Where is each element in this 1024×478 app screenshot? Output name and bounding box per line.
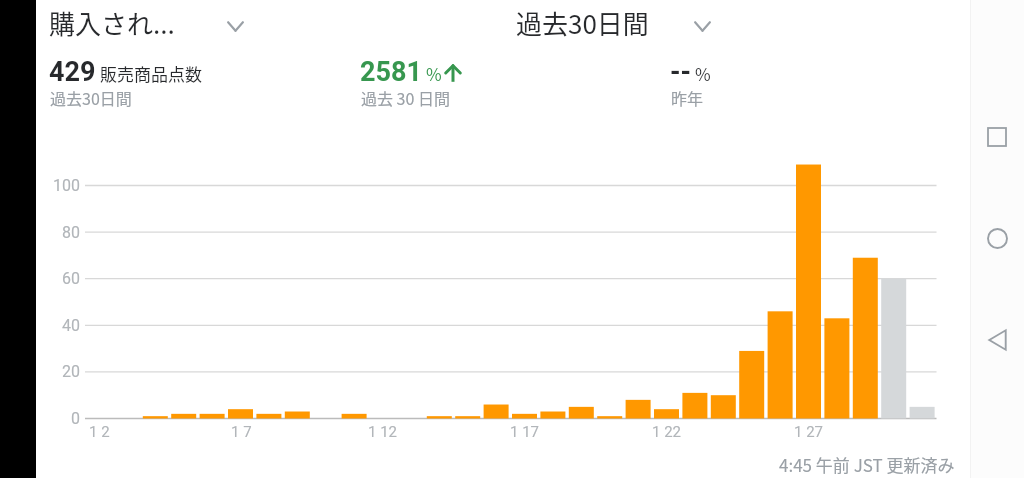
staticText: 4:45 午前 JST 更新済み (779, 452, 955, 477)
button[interactable]: 過去30日間 (510, 4, 719, 42)
staticText: 60 (62, 269, 80, 288)
staticText: 昨年 (671, 86, 704, 109)
staticText: 1 2 (89, 423, 110, 441)
button[interactable]: Back (970, 313, 1024, 367)
staticText: 1 12 (368, 423, 398, 441)
staticText: 1 7 (231, 423, 252, 441)
staticText: 100 (53, 176, 80, 195)
staticText: 40 (62, 316, 80, 335)
staticText: 購入され... (49, 4, 175, 42)
staticText: 20 (62, 362, 80, 381)
staticText: 過去30日間 (516, 4, 649, 42)
button[interactable]: Recent apps (970, 110, 1024, 164)
staticText: 過去 30 日間 (361, 86, 450, 109)
staticText: % (695, 61, 711, 86)
staticText: 1 17 (510, 423, 540, 441)
staticText: 過去30日間 (50, 86, 132, 109)
staticText: 1 22 (652, 423, 682, 441)
staticText: 2581 (360, 56, 422, 88)
button[interactable]: 購入され... (43, 4, 252, 42)
staticText: -- (670, 56, 691, 88)
staticText: 429 (49, 56, 96, 88)
staticText: 1 27 (794, 423, 824, 441)
staticText: 80 (62, 223, 80, 242)
staticText: 販売商品点数 (100, 61, 202, 86)
staticText: 0 (71, 409, 80, 428)
button[interactable]: Home (970, 211, 1024, 265)
staticText: % (426, 61, 442, 86)
